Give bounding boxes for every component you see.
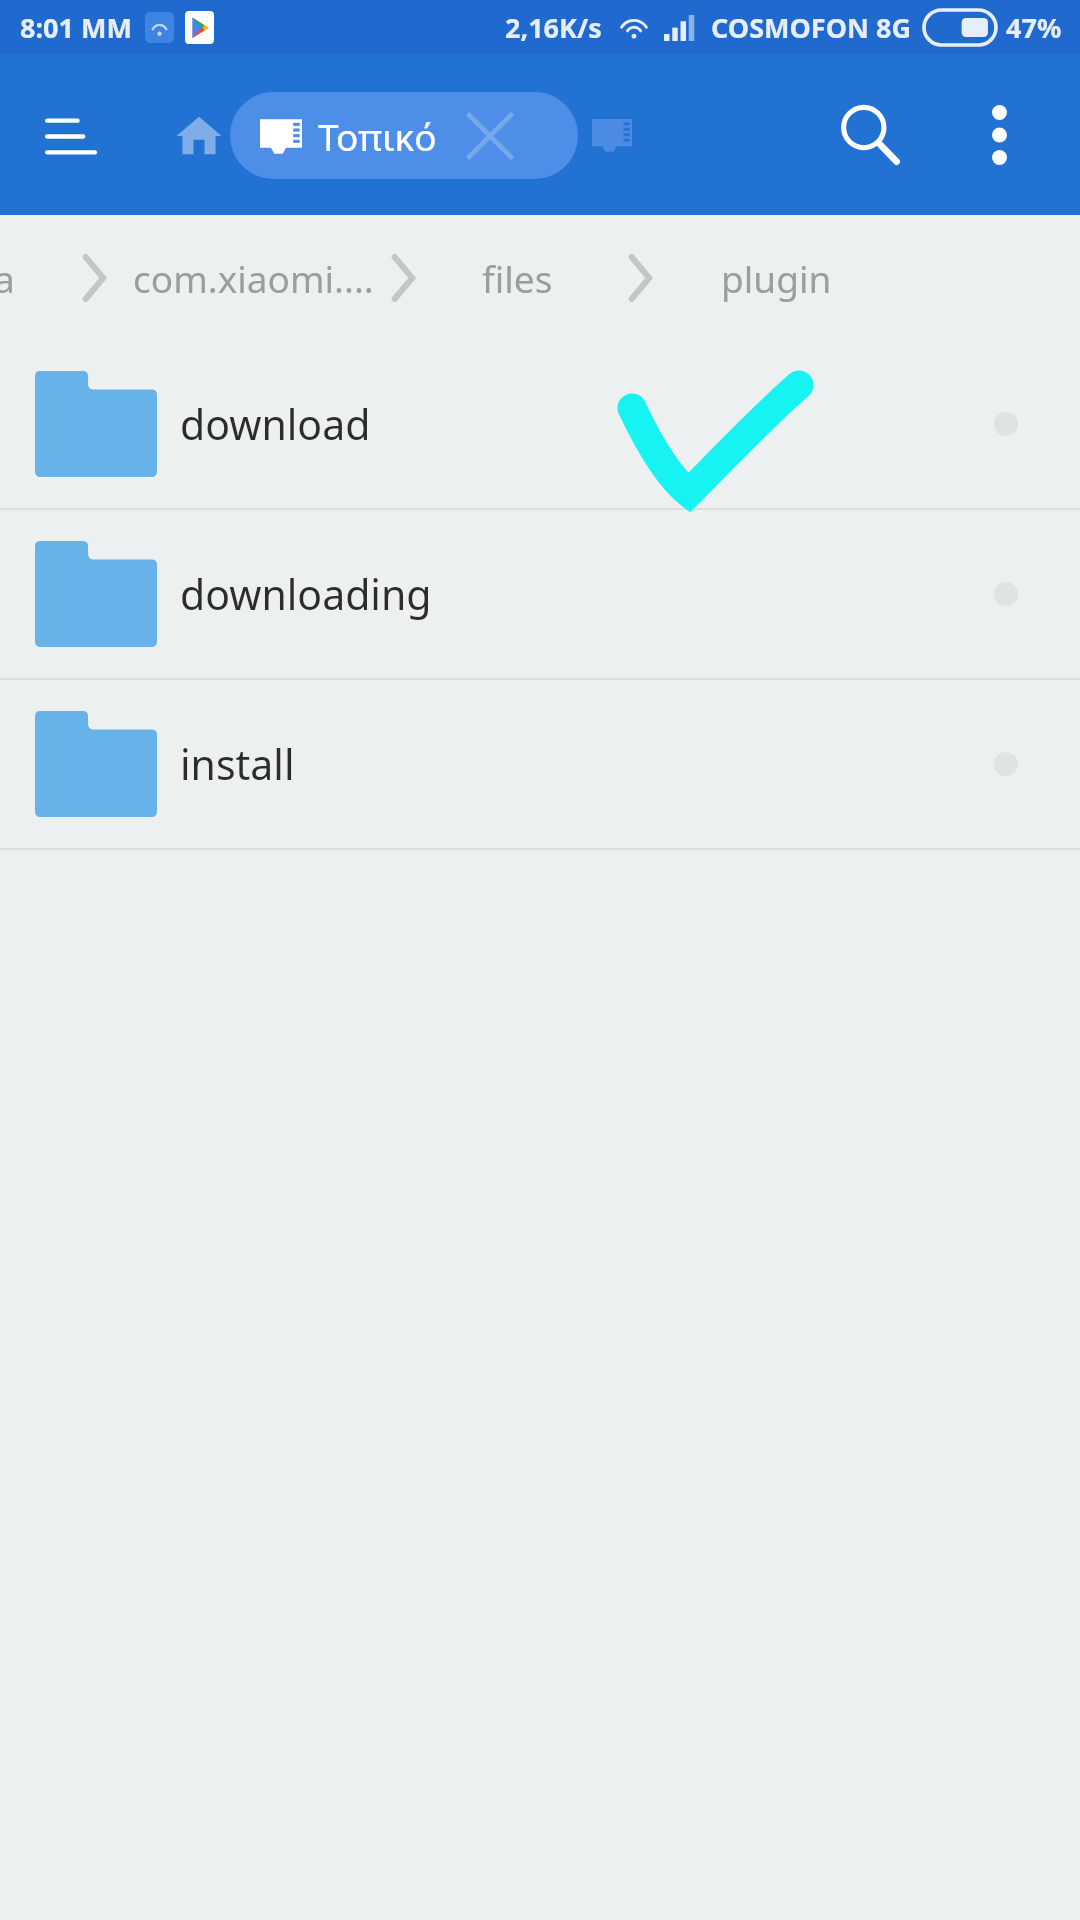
staticText: 47%: [1006, 9, 1062, 46]
staticText: download: [180, 396, 371, 452]
staticText: 8:01 MM: [20, 9, 132, 46]
button[interactable]: download: [0, 340, 1080, 508]
button[interactable]: Item options: [977, 735, 1035, 793]
staticText: 2,16K/s: [505, 9, 602, 46]
button[interactable]: Home: [160, 96, 238, 174]
button[interactable]: Search: [823, 88, 917, 182]
button[interactable]: a: [0, 253, 15, 303]
staticText: COSMOFON 8G: [711, 9, 911, 46]
button[interactable]: Close tab: [461, 107, 519, 165]
button[interactable]: Item options: [977, 565, 1035, 623]
button[interactable]: com.xiaomi....: [133, 253, 374, 303]
button[interactable]: Menu: [30, 92, 116, 178]
button[interactable]: downloading: [0, 510, 1080, 678]
staticText: Τοπικό: [318, 111, 437, 161]
staticText: downloading: [180, 566, 432, 622]
staticText: install: [180, 736, 295, 792]
button[interactable]: More options: [956, 92, 1042, 178]
button[interactable]: Item options: [977, 395, 1035, 453]
button[interactable]: files: [482, 253, 553, 303]
button[interactable]: plugin: [721, 253, 832, 303]
button[interactable]: install: [0, 680, 1080, 848]
button[interactable]: Τοπικό: [230, 92, 578, 179]
